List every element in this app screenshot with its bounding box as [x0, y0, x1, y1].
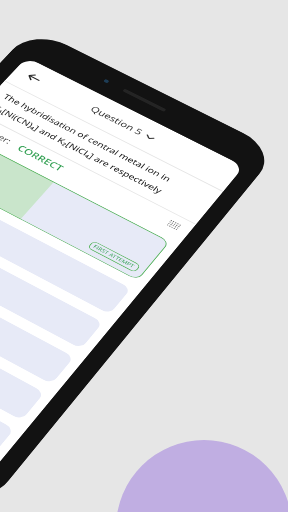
- button[interactable]: Back: [5, 57, 63, 99]
- button[interactable]: [0, 211, 103, 349]
- other: Menu: [165, 219, 182, 232]
- button[interactable]: Question 5: [84, 100, 162, 146]
- button[interactable]: [0, 277, 45, 420]
- staticText: CORRECT: [15, 142, 67, 173]
- button[interactable]: [0, 311, 14, 458]
- button[interactable]: FIRST ATTEMPT: [0, 135, 170, 281]
- button[interactable]: [0, 244, 74, 384]
- staticText: Answer:: [0, 121, 14, 146]
- staticText: Question 5: [88, 103, 146, 137]
- staticText: The hybridisation of central metal ion i…: [1, 91, 174, 184]
- button[interactable]: [0, 179, 131, 314]
- staticText: FIRST ATTEMPT: [92, 243, 136, 270]
- staticText: K₄[Ni(CN)₄] and K₂[NiCl₄] are respective…: [0, 102, 165, 196]
